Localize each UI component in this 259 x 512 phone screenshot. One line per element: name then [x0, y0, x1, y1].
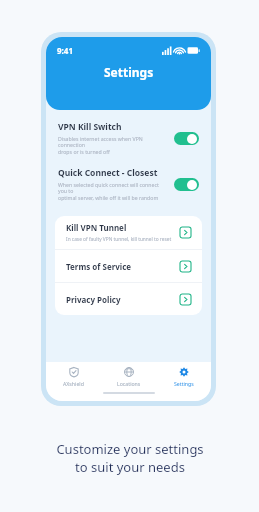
button[interactable]: Quick Connect - Closest [46, 165, 211, 204]
staticText: Locations [117, 380, 141, 387]
staticText: AXshield [63, 380, 84, 387]
staticText: In case of faulty VPN tunnel, kill tunne… [66, 236, 172, 243]
staticText: Disables internet access when VPN connec… [58, 135, 168, 156]
staticText: Settings [104, 64, 154, 80]
button[interactable]: VPN Kill Switch [46, 119, 211, 158]
staticText: Privacy Policy [66, 294, 121, 305]
staticText: When selected quick connect will connect… [58, 181, 168, 202]
button[interactable]: Open [180, 261, 191, 272]
staticText: VPN Kill Switch [58, 121, 122, 133]
staticText: Kill VPN Tunnel [66, 222, 127, 233]
button[interactable]: Open [180, 227, 191, 238]
button[interactable]: AXshield [46, 362, 101, 392]
staticText: Customize your settings to suit your nee… [56, 440, 204, 476]
button[interactable]: Privacy Policy [55, 283, 202, 315]
staticText: Quick Connect - Closest [58, 167, 158, 179]
button[interactable]: Locations [101, 362, 156, 392]
button[interactable]: Terms of Service [55, 250, 202, 282]
button[interactable]: Settings [156, 362, 211, 392]
button[interactable]: Open [180, 294, 191, 305]
button[interactable]: Toggle VPN Kill Switch [174, 132, 199, 145]
staticText: Terms of Service [66, 261, 132, 272]
button[interactable]: Kill VPN Tunnel [55, 216, 202, 249]
staticText: Settings [174, 380, 194, 387]
staticText: 9:41 [57, 45, 73, 56]
button[interactable]: Toggle Quick Connect - Closest [174, 178, 199, 191]
